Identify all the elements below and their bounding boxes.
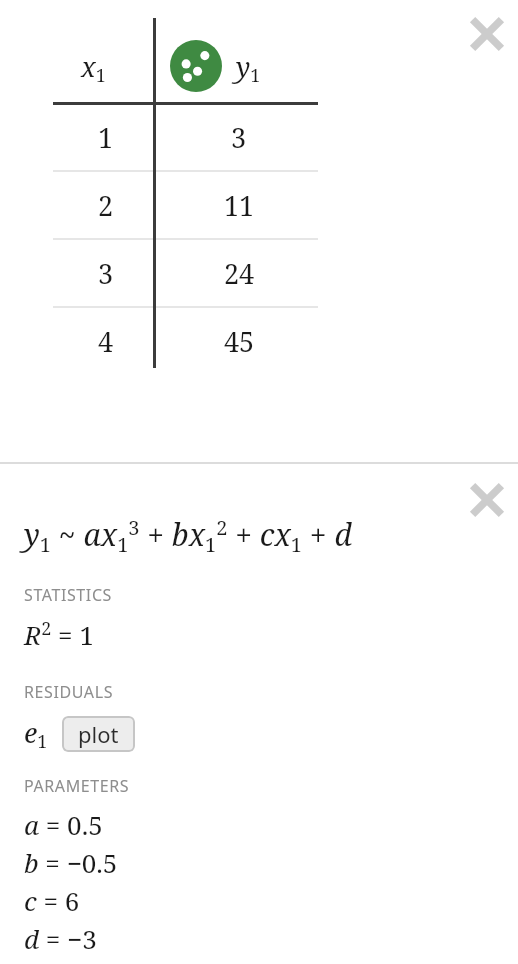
button[interactable]: plot [62, 716, 135, 752]
staticText: b = −0.5 [24, 845, 118, 880]
staticText: 4 [98, 323, 114, 360]
staticText: 11 [224, 187, 255, 224]
staticText: plot [78, 719, 119, 749]
staticText: STATISTICS [24, 584, 112, 606]
staticText: c = 6 [24, 883, 80, 918]
button[interactable]: Close [463, 10, 511, 58]
staticText: x1 [81, 48, 106, 88]
staticText: 2 [98, 187, 114, 224]
staticText: a = 0.5 [24, 807, 103, 842]
staticText: PARAMETERS [24, 775, 130, 797]
staticText: R2 = 1 [24, 616, 94, 653]
staticText: e1 [24, 714, 48, 754]
staticText: 3 [98, 255, 114, 292]
staticText: 24 [224, 255, 255, 292]
staticText: 45 [224, 323, 255, 360]
staticText: 3 [231, 119, 247, 156]
staticText: d = −3 [24, 921, 97, 956]
staticText: y1 [236, 48, 261, 88]
button[interactable]: Close [463, 476, 511, 524]
staticText: y1 ~ ax13 + bx12 + cx1 + d [24, 514, 352, 558]
staticText: 1 [98, 119, 114, 156]
staticText: RESIDUALS [24, 681, 114, 703]
